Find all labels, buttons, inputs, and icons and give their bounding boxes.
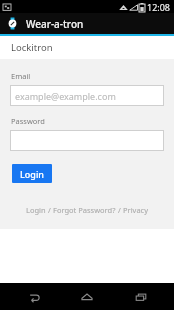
staticText: Privacy (123, 205, 149, 215)
staticText: Lockitron (11, 41, 53, 54)
button[interactable]: Login (26, 205, 46, 215)
button[interactable]: Home (67, 283, 107, 310)
staticText: 12:08 (147, 1, 171, 13)
button[interactable]: example@example.com (10, 85, 164, 106)
staticText: example@example.com (15, 90, 116, 102)
staticText: Wear-a-tron (26, 17, 84, 31)
button[interactable]: Login (12, 164, 52, 183)
button[interactable]: Back (14, 283, 54, 310)
staticText: / (46, 205, 53, 215)
staticText: Forgot Password? (53, 205, 116, 215)
staticText: Password (11, 116, 45, 126)
staticText: Login (20, 168, 44, 180)
button[interactable]: Privacy (123, 205, 149, 215)
button[interactable]: Recent apps (121, 283, 161, 310)
button[interactable]: Forgot Password? (53, 205, 116, 215)
button[interactable]: Wear-a-tron (0, 13, 174, 34)
staticText: Email (11, 71, 31, 81)
staticText: / (116, 205, 123, 215)
button[interactable] (10, 130, 164, 151)
staticText: Login (26, 205, 46, 215)
